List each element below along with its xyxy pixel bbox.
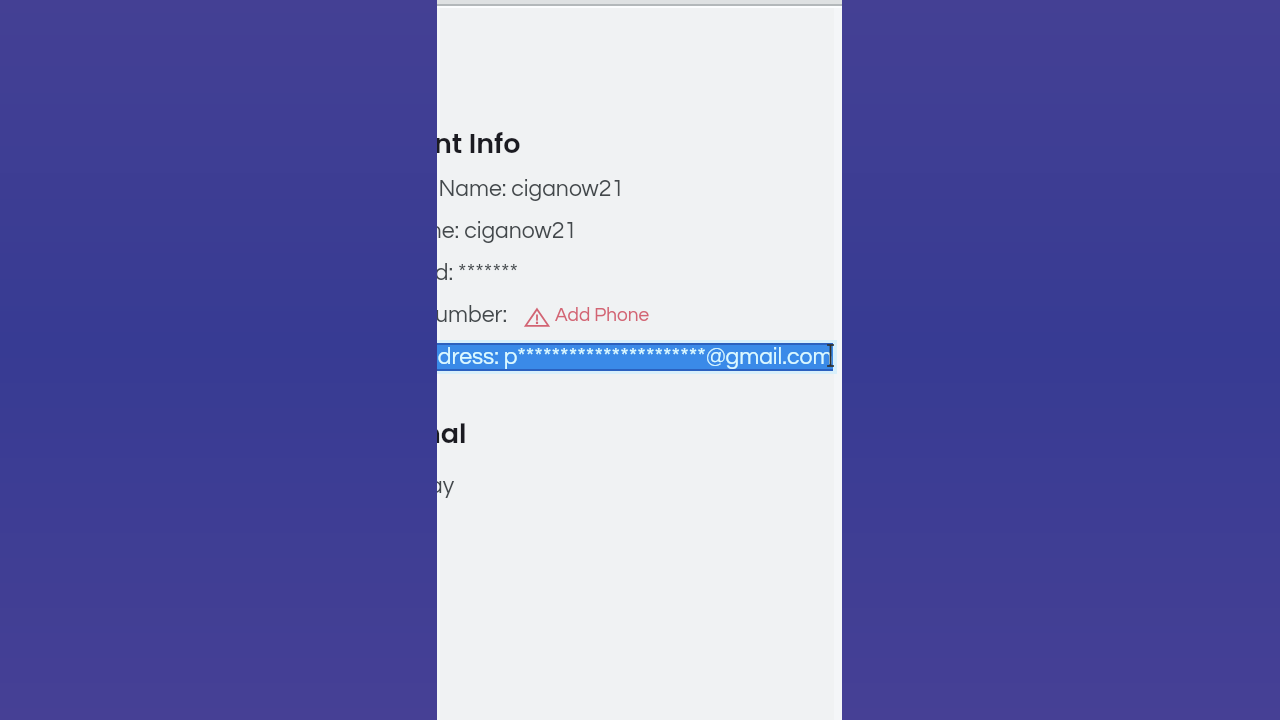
staticText: Phone Number:	[437, 303, 513, 327]
staticText: Add Phone	[555, 305, 649, 325]
button[interactable]: Account Name: ciganow21	[437, 177, 625, 201]
button[interactable]: Personal	[437, 415, 467, 453]
button[interactable]: Account Info	[437, 125, 521, 163]
other: Text cursor	[826, 344, 835, 367]
button[interactable]	[437, 343, 833, 371]
button[interactable]: Password: *******	[437, 261, 519, 285]
button[interactable]: Birthday	[437, 474, 455, 498]
button[interactable]: Warning	[525, 305, 649, 325]
other: Warning	[525, 308, 549, 327]
button[interactable]: Username: ciganow21	[437, 219, 578, 243]
staticText: Email Address: p**********************@g…	[437, 345, 833, 369]
